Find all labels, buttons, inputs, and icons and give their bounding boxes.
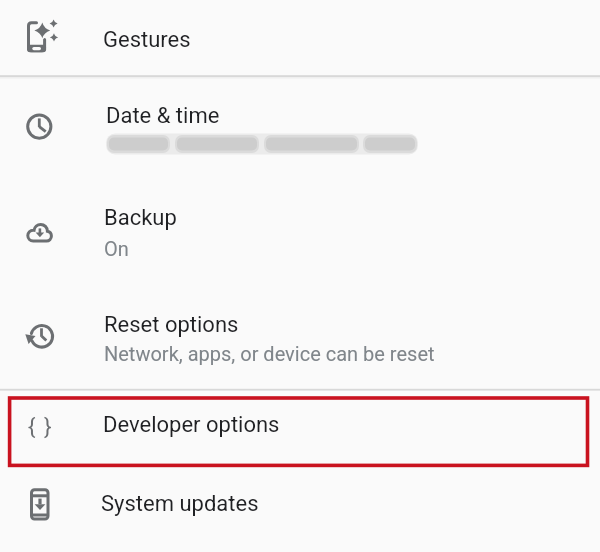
- staticText: Gestures: [103, 27, 191, 53]
- staticText: }: [44, 414, 52, 440]
- staticText: System updates: [101, 491, 259, 517]
- staticText: Backup: [104, 205, 177, 231]
- staticText: Network, apps, or device can be reset: [104, 342, 435, 365]
- button[interactable]: {: [0, 390, 600, 467]
- button[interactable]: Backup: [0, 181, 600, 285]
- button[interactable]: System updates: [0, 467, 600, 543]
- staticText: Reset options: [104, 312, 239, 338]
- staticText: Date & time: [106, 103, 220, 129]
- staticText: On: [104, 237, 129, 260]
- staticText: {: [28, 414, 36, 440]
- button[interactable]: Date & time: [0, 77, 600, 181]
- button[interactable]: Reset options: [0, 285, 600, 389]
- staticText: Developer options: [103, 412, 280, 438]
- button[interactable]: Gestures: [0, 0, 600, 76]
